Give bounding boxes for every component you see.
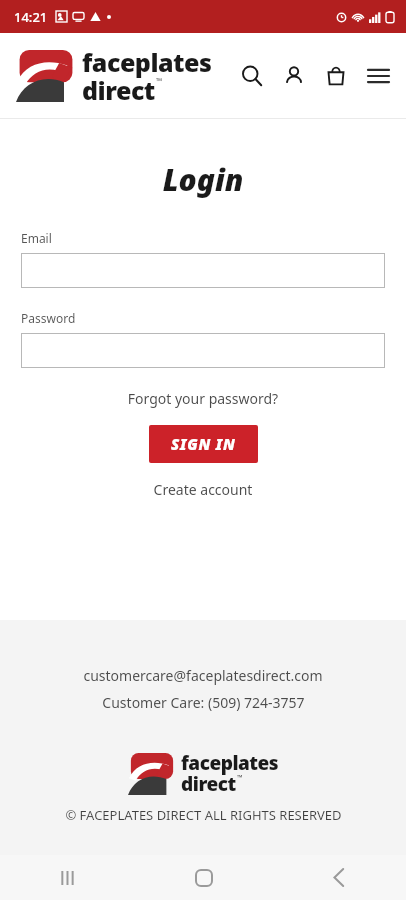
staticText: Email xyxy=(21,230,52,246)
button[interactable]: Search xyxy=(234,58,270,94)
staticText: © FACEPLATES DIRECT ALL RIGHTS RESERVED xyxy=(65,806,342,824)
button[interactable]: Cart xyxy=(318,58,354,94)
staticText: direct xyxy=(82,73,155,107)
button[interactable]: Back xyxy=(271,855,406,900)
button[interactable] xyxy=(21,333,385,368)
button[interactable]: SIGN IN xyxy=(149,425,258,463)
staticText: Login xyxy=(21,159,385,200)
button[interactable] xyxy=(21,253,385,288)
button[interactable]: Account xyxy=(276,58,312,94)
button[interactable]: faceplates xyxy=(16,45,212,107)
button[interactable]: faceplates xyxy=(128,750,279,797)
button[interactable]: Menu xyxy=(360,58,396,94)
button[interactable]: Home xyxy=(136,855,271,900)
button[interactable]: Forgot your password? xyxy=(21,389,385,408)
button[interactable]: Create account xyxy=(21,480,385,499)
staticText: ™ xyxy=(156,75,163,86)
button[interactable]: Recents xyxy=(0,855,136,900)
staticText: ™ xyxy=(237,773,243,783)
staticText: faceplates xyxy=(181,750,279,776)
staticText: Password xyxy=(21,310,76,326)
button[interactable]: Customer Care: (509) 724-3757 xyxy=(102,693,305,712)
button[interactable]: customercare@faceplatesdirect.com xyxy=(83,666,323,685)
staticText: direct xyxy=(181,771,236,797)
staticText: faceplates xyxy=(82,45,212,79)
staticText: 14:21 xyxy=(14,8,48,26)
staticText: SIGN IN xyxy=(171,434,236,454)
